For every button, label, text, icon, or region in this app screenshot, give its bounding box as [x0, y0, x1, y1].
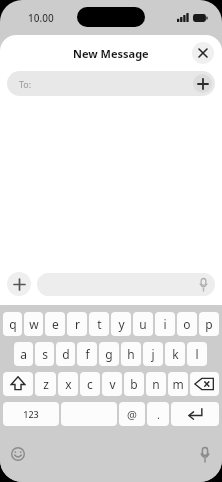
button[interactable]: o — [177, 312, 197, 336]
button[interactable]: j — [143, 342, 163, 366]
button[interactable]: Voice input — [37, 273, 215, 296]
staticText: 123 — [23, 408, 39, 420]
staticText: u — [139, 316, 147, 332]
button[interactable]: Close — [192, 42, 214, 64]
button[interactable]: q — [3, 312, 22, 336]
staticText: d — [62, 346, 70, 362]
button[interactable]: m — [168, 372, 188, 396]
button[interactable]: w — [24, 312, 43, 336]
button[interactable]: 123 — [3, 402, 59, 426]
staticText: 10.00 — [28, 11, 54, 25]
staticText: w — [29, 316, 39, 332]
button[interactable]: l — [187, 342, 207, 366]
staticText: n — [152, 376, 160, 392]
button[interactable]: u — [133, 312, 153, 336]
button[interactable]: @ — [119, 402, 145, 426]
staticText: s — [42, 346, 48, 362]
staticText: p — [205, 316, 213, 332]
button[interactable]: x — [58, 372, 78, 396]
button[interactable]: Shift — [3, 372, 33, 396]
staticText: e — [52, 316, 59, 332]
staticText: z — [43, 376, 49, 392]
button[interactable]: a — [14, 342, 33, 366]
button[interactable]: Return — [171, 402, 219, 426]
button[interactable]: t — [89, 312, 109, 336]
staticText: g — [105, 346, 113, 362]
staticText: l — [195, 346, 199, 362]
staticText: v — [109, 376, 116, 392]
button[interactable]: n — [146, 372, 166, 396]
staticText: y — [118, 316, 125, 332]
staticText: k — [172, 346, 179, 362]
button[interactable]: h — [121, 342, 141, 366]
staticText: r — [75, 316, 80, 332]
staticText: c — [87, 376, 93, 392]
staticText: t — [97, 316, 102, 332]
button[interactable]: Add attachment — [7, 272, 31, 296]
button[interactable]: b — [124, 372, 144, 396]
button[interactable]: c — [80, 372, 100, 396]
staticText: h — [127, 346, 135, 362]
staticText: f — [85, 346, 90, 362]
button[interactable]: v — [102, 372, 122, 396]
staticText: i — [163, 316, 167, 332]
button[interactable]: . — [147, 402, 169, 426]
staticText: j — [151, 346, 155, 362]
button[interactable]: z — [35, 372, 56, 396]
button[interactable]: Dictate — [200, 447, 210, 462]
other: Voice input — [199, 278, 208, 291]
button[interactable]: To: — [7, 71, 215, 96]
staticText: @ — [127, 407, 137, 422]
staticText: q — [9, 316, 17, 332]
staticText: x — [65, 376, 72, 392]
staticText: b — [130, 376, 138, 392]
button[interactable]: i — [155, 312, 175, 336]
staticText: m — [172, 376, 184, 392]
button[interactable]: Add recipient — [193, 74, 212, 93]
button[interactable]: g — [99, 342, 119, 366]
button[interactable]: r — [67, 312, 87, 336]
button[interactable]: s — [35, 342, 54, 366]
staticText: . — [157, 407, 160, 422]
button[interactable]: p — [199, 312, 219, 336]
button[interactable]: f — [77, 342, 97, 366]
button[interactable]: e — [45, 312, 65, 336]
button[interactable] — [61, 402, 117, 426]
button[interactable]: k — [165, 342, 185, 366]
button[interactable]: y — [111, 312, 131, 336]
staticText: o — [183, 316, 191, 332]
staticText: a — [20, 346, 27, 362]
staticText: To: — [19, 78, 32, 90]
staticText: New Message — [73, 46, 149, 61]
button[interactable]: Backspace — [190, 372, 219, 396]
button[interactable]: d — [56, 342, 75, 366]
button[interactable]: Emoji — [11, 447, 25, 461]
